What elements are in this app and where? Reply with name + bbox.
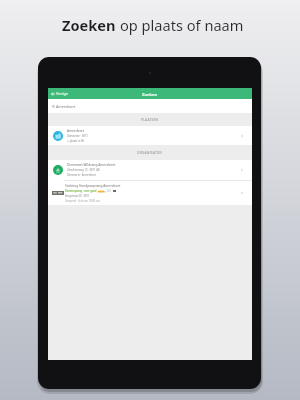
staticText: Geopend · sluit om 18:00 uur — [65, 199, 101, 203]
staticText: Amersfoort — [67, 129, 85, 133]
button[interactable]: Dierenarts Wildvang Amersfoort — [48, 160, 252, 180]
button[interactable]: Amersfoort — [48, 99, 252, 113]
staticText: ○ plaats in NL — [67, 139, 85, 143]
staticText: Dierenopvang · zeer goed — [65, 189, 97, 193]
staticText: Utrechtseweg 12 · 3811 AB — [67, 168, 100, 172]
button[interactable]: Stichting Hondjesopvang Amersfoort — [48, 181, 252, 205]
staticText: Zoeken — [62, 15, 120, 35]
staticText: PLAATSEN — [141, 118, 159, 122]
staticText: Amersfoort — [56, 104, 76, 109]
staticText: 3.5 — [107, 189, 111, 193]
staticText: Vorige — [56, 91, 69, 96]
staticText: Dierenarts Wildvang Amersfoort — [67, 163, 116, 167]
button[interactable]: Amersfoort — [48, 126, 252, 145]
staticText: Zoeken — [142, 91, 158, 97]
staticText: ORGANISATIES — [137, 151, 163, 155]
staticText: Gemeente · 3811 — [67, 134, 88, 138]
staticText: Bergstraat 20 · 3811 — [65, 194, 90, 198]
staticText: op plaats of naam — [120, 15, 244, 35]
staticText: Dierenarts · Amersfoort — [67, 173, 96, 177]
staticText: Stichting Hondjesopvang Amersfoort — [65, 184, 121, 188]
button[interactable]: Vorige — [51, 88, 252, 99]
